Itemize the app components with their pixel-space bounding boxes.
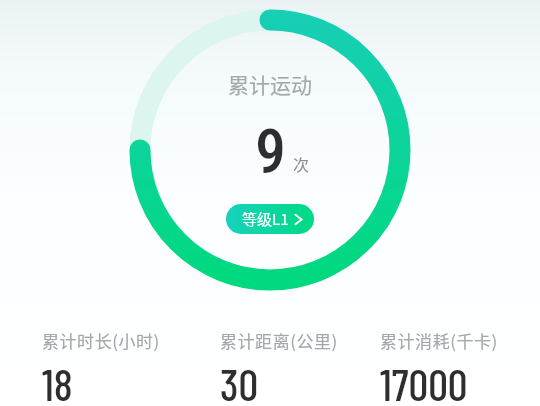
staticText: 次 bbox=[293, 152, 310, 175]
staticText: 累计距离(公里) bbox=[220, 328, 338, 353]
staticText: 30 bbox=[220, 357, 259, 406]
button[interactable]: 累计时长(小时) bbox=[42, 328, 160, 406]
staticText: 18 bbox=[42, 357, 73, 406]
staticText: 9 bbox=[255, 115, 286, 188]
button[interactable]: 累计消耗(千卡) bbox=[380, 328, 498, 406]
staticText: 等级L1 bbox=[242, 208, 289, 230]
other: Open level details bbox=[293, 214, 304, 225]
staticText: 17000 bbox=[380, 357, 468, 406]
staticText: 累计消耗(千卡) bbox=[380, 328, 498, 353]
button[interactable]: 累计距离(公里) bbox=[220, 328, 338, 406]
staticText: 累计运动 bbox=[228, 69, 312, 99]
staticText: 累计时长(小时) bbox=[42, 328, 160, 353]
button[interactable]: 等级L1 bbox=[226, 204, 314, 234]
